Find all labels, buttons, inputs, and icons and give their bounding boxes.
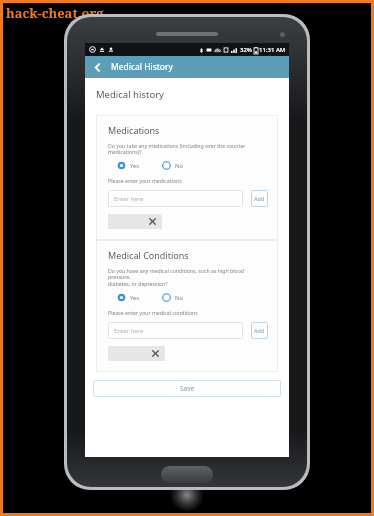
- button[interactable]: Add: [251, 190, 268, 207]
- other: Remove: [152, 350, 159, 357]
- staticText: Enter here: [114, 195, 144, 203]
- button[interactable]: Back: [89, 59, 105, 75]
- staticText: Add: [254, 195, 265, 202]
- staticText: No: [175, 294, 183, 302]
- staticText: Medical Conditions: [108, 249, 189, 261]
- button[interactable]: Save: [93, 380, 281, 397]
- staticText: Medications: [108, 124, 160, 136]
- staticText: 32%: [240, 46, 252, 54]
- staticText: Do you take any medications (including o…: [108, 142, 246, 156]
- button[interactable]: Enter here: [108, 190, 243, 207]
- staticText: hack-cheat.org: [6, 4, 104, 22]
- button[interactable]: No: [162, 293, 183, 302]
- staticText: Medical History: [111, 61, 173, 73]
- button[interactable]: Yes: [117, 293, 140, 302]
- staticText: Yes: [130, 162, 140, 170]
- staticText: No: [175, 162, 183, 170]
- staticText: Add: [254, 327, 265, 334]
- staticText: Yes: [130, 294, 140, 302]
- button[interactable]: Enter here: [108, 322, 243, 339]
- other: Home: [161, 466, 213, 483]
- staticText: Do you have any medical conditions, such…: [108, 267, 268, 288]
- staticText: Please enter your medical conditions: [108, 309, 198, 316]
- button[interactable]: Remove: [108, 214, 162, 229]
- other: Remove: [149, 218, 156, 225]
- staticText: Enter here: [114, 327, 144, 335]
- button[interactable]: Add: [251, 322, 268, 339]
- staticText: Medical history: [96, 88, 164, 101]
- button[interactable]: No: [162, 161, 183, 170]
- button[interactable]: Remove: [108, 346, 165, 361]
- staticText: 11:31 AM: [259, 46, 286, 54]
- staticText: Please enter your medications: [108, 177, 182, 184]
- staticText: Save: [180, 384, 195, 393]
- button[interactable]: Yes: [117, 161, 140, 170]
